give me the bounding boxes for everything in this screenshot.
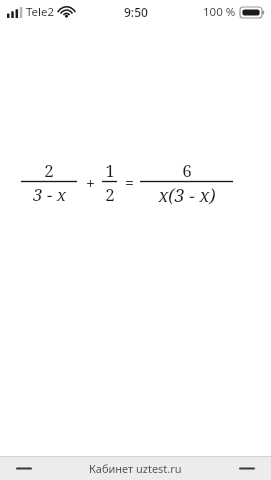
staticText: + xyxy=(86,172,95,194)
staticText: 1 xyxy=(105,159,115,180)
staticText: x(3 − x) xyxy=(158,183,216,207)
staticText: Tele2 xyxy=(26,4,55,20)
button[interactable]: Кабинет uztest.ru xyxy=(89,461,182,476)
staticText: 2 xyxy=(105,183,115,206)
staticText: Кабинет uztest.ru xyxy=(89,461,182,476)
staticText: 3 − x xyxy=(33,183,66,206)
staticText: 2 xyxy=(44,159,54,180)
staticText: 9:50 xyxy=(124,4,148,20)
staticText: = xyxy=(125,172,134,194)
button[interactable]: Previous page xyxy=(4,457,44,480)
staticText: 6 xyxy=(182,159,192,180)
button[interactable]: Next page xyxy=(227,457,267,480)
staticText: 100 % xyxy=(203,4,236,20)
